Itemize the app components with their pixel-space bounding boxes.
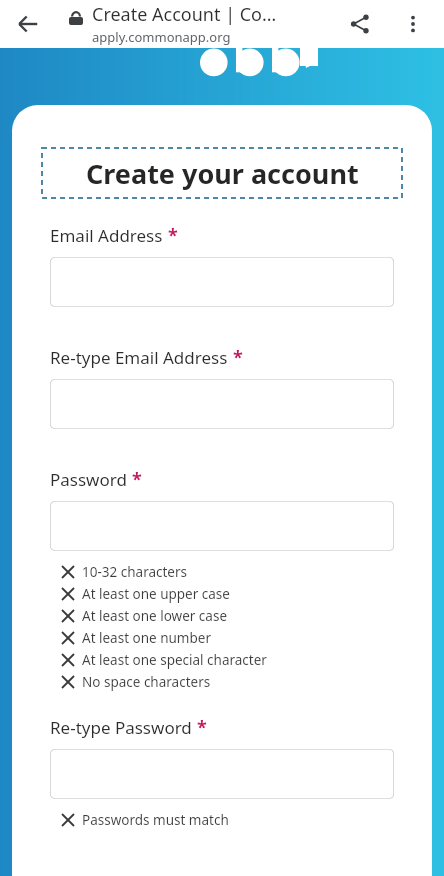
staticText: Create your account [86,155,359,192]
staticText: Create Account | Co… [92,2,277,27]
button[interactable] [50,257,394,307]
staticText: At least one lower case [82,607,227,625]
staticText: Email Address [50,224,163,247]
staticText: * [132,467,142,492]
button[interactable] [50,749,394,799]
button[interactable]: More options [391,2,435,46]
button[interactable]: Back [6,2,50,46]
staticText: Re-type Password [50,716,192,739]
staticText: 10-32 characters [82,563,188,581]
staticText: Password [50,468,127,491]
staticText: apply.commonapp.org [92,28,231,46]
staticText: No space characters [82,673,211,691]
button[interactable] [50,501,394,551]
staticText: * [168,223,178,248]
staticText: At least one upper case [82,585,230,603]
staticText: At least one special character [82,651,267,669]
staticText: * [233,345,243,370]
button[interactable]: Share [338,2,382,46]
staticText: At least one number [82,629,211,647]
staticText: * [197,715,207,740]
staticText: Passwords must match [82,811,229,829]
staticText: Re-type Email Address [50,346,228,369]
button[interactable] [50,379,394,429]
